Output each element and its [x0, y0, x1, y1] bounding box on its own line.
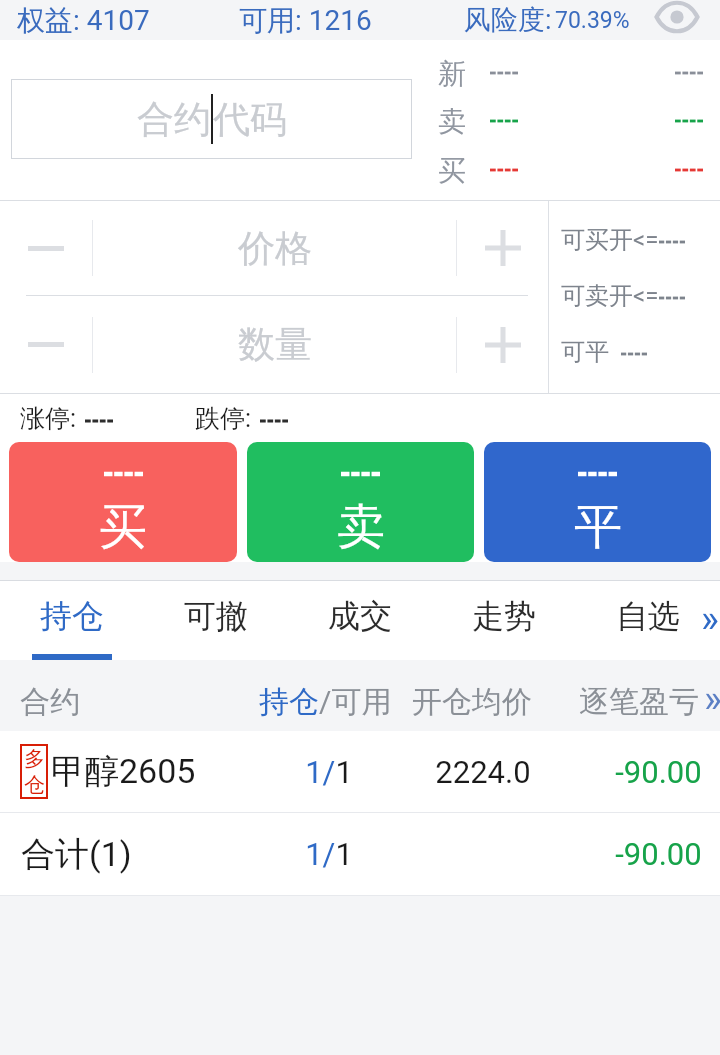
staticText: -90.00	[615, 836, 702, 872]
button[interactable]: 买	[9, 442, 237, 562]
button[interactable]: 持仓	[0, 581, 144, 660]
button[interactable]: 可撤	[144, 581, 288, 660]
staticText: 可撤	[184, 596, 248, 636]
button[interactable]: 自选	[576, 581, 720, 660]
staticText: 仓	[24, 772, 45, 798]
button[interactable]: 卖	[247, 442, 474, 562]
staticText: 平	[574, 497, 622, 557]
staticText: 可买开<=	[561, 225, 659, 251]
staticText: 可平	[561, 337, 621, 363]
staticText: 自选	[616, 596, 680, 636]
staticText: 买	[438, 153, 466, 188]
button[interactable]: 合约	[11, 79, 412, 159]
staticText: »	[701, 597, 719, 642]
staticText: »	[704, 677, 720, 722]
staticText: 70.39%	[555, 7, 630, 34]
staticText: 甲醇2605	[51, 750, 196, 793]
staticText: 卖	[337, 497, 385, 557]
button[interactable]: 走势	[432, 581, 576, 660]
staticText: 开仓均价	[412, 683, 532, 721]
staticText: 可卖开<=	[561, 281, 659, 307]
staticText: 权益: 4107	[17, 3, 150, 38]
button[interactable]: Increase 价格	[457, 201, 548, 295]
button[interactable]: 成交	[288, 581, 432, 660]
staticText: 合计(1)	[21, 833, 132, 876]
staticText: 跌停:	[195, 403, 252, 434]
button[interactable]: Toggle balance visibility	[653, 0, 701, 37]
staticText: 合约	[20, 683, 80, 721]
button[interactable]: Decrease 数量	[0, 296, 92, 393]
staticText: 新	[438, 56, 466, 91]
staticText: 走势	[472, 596, 536, 636]
button[interactable]: Increase 数量	[457, 296, 548, 393]
button[interactable]: 数量	[93, 296, 456, 393]
staticText: 涨停:	[20, 403, 77, 434]
button[interactable]: 价格	[93, 201, 456, 295]
staticText: 代码	[213, 96, 287, 143]
staticText: 2224.0	[435, 754, 531, 790]
staticText: 价格	[238, 225, 312, 272]
staticText: 合约	[137, 96, 211, 143]
button[interactable]: 平	[484, 442, 711, 562]
button[interactable]: Decrease 价格	[0, 201, 92, 295]
staticText: 逐笔盈亏	[579, 683, 699, 721]
button[interactable]: More tabs	[700, 581, 720, 660]
staticText: 持仓/可用	[259, 683, 392, 721]
staticText: 可用: 1216	[239, 3, 372, 38]
staticText: -90.00	[615, 754, 702, 790]
staticText: 1/1	[305, 754, 353, 790]
staticText: 持仓	[40, 596, 104, 636]
staticText: 买	[99, 497, 147, 557]
staticText: 数量	[238, 321, 312, 368]
button[interactable]: More columns	[704, 660, 720, 731]
staticText: 1/1	[305, 836, 353, 872]
staticText: 风险度:	[464, 3, 552, 37]
staticText: 卖	[438, 104, 466, 139]
button[interactable]: 多	[0, 731, 720, 812]
staticText: 成交	[328, 596, 392, 636]
staticText: 多	[24, 746, 45, 772]
